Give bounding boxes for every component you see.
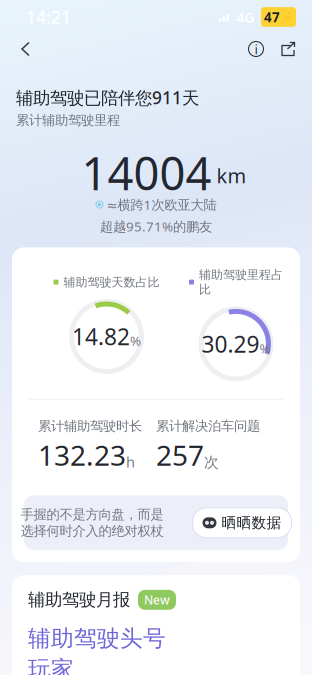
staticText: 14004	[81, 143, 211, 203]
staticText: 累计辅助驾驶时长	[38, 418, 142, 434]
staticText: 辅助驾驶月报	[28, 589, 130, 610]
staticText: 累计辅助驾驶里程	[16, 112, 120, 128]
staticText: 辅助驾驶头号	[28, 624, 166, 652]
staticText: 晒晒数据	[221, 514, 281, 532]
staticText: 超越95.71%的鹏友	[100, 217, 212, 235]
staticText: 14:21	[26, 5, 71, 28]
button[interactable]: 晒晒数据	[192, 508, 291, 538]
staticText: 14.82	[72, 321, 130, 352]
staticText: 玩家	[28, 655, 74, 675]
staticText: 47	[264, 8, 280, 26]
staticText: 辅助驾驶天数占比	[63, 275, 159, 289]
staticText: 辅助驾驶里程占比	[199, 267, 283, 297]
button[interactable]: Back	[8, 34, 44, 64]
staticText: ≈横跨1次欧亚大陆	[106, 196, 216, 213]
staticText: km	[216, 162, 246, 189]
staticText: 手握的不是方向盘，而是选择何时介入的绝对权杖	[20, 506, 163, 539]
staticText: 257	[156, 436, 204, 473]
staticText: ⚡	[280, 11, 293, 23]
staticText: 辅助驾驶已陪伴您911天	[16, 86, 199, 109]
button[interactable]: Info	[240, 34, 272, 64]
staticText: i	[254, 40, 257, 58]
staticText: %	[259, 339, 270, 357]
staticText: %	[130, 332, 141, 349]
staticText: 132.23	[38, 436, 126, 473]
staticText: 次	[204, 453, 219, 471]
staticText: 30.29	[201, 329, 259, 359]
staticText: 累计解决泊车问题	[156, 418, 260, 434]
staticText: 4G	[236, 7, 255, 27]
staticText: New	[144, 592, 170, 608]
staticText: h	[126, 452, 135, 471]
button[interactable]: Share	[272, 34, 304, 64]
